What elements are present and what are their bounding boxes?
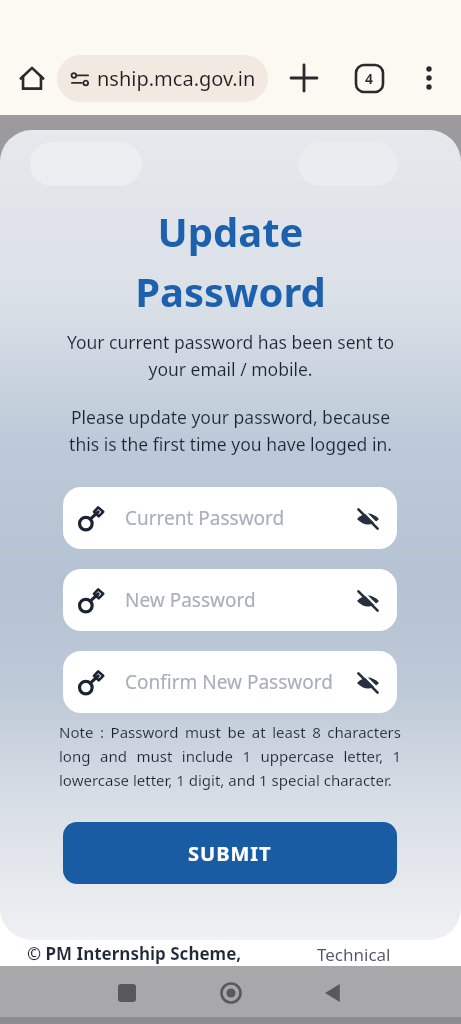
staticText: Confirm New Password	[125, 669, 333, 695]
staticText: 4	[365, 69, 374, 88]
button[interactable]	[285, 59, 323, 97]
button[interactable]	[108, 974, 146, 1012]
button[interactable]: New Password	[63, 569, 397, 631]
button[interactable]	[212, 974, 250, 1012]
button[interactable]: 4	[350, 59, 388, 97]
button[interactable]	[13, 59, 51, 97]
staticText: Note : Password must be at least 8 chara…	[59, 722, 401, 790]
staticText: Update Password	[0, 204, 461, 319]
button[interactable]: SUBMIT	[63, 822, 397, 884]
staticText: Your current password has been sent to y…	[0, 330, 461, 381]
staticText: Current Password	[125, 505, 285, 531]
button[interactable]: nship.mca.gov.in	[57, 55, 268, 102]
staticText: New Password	[125, 587, 256, 613]
staticText: SUBMIT	[188, 840, 272, 867]
button[interactable]	[314, 974, 352, 1012]
button[interactable]: Confirm New Password	[63, 651, 397, 713]
staticText: Technical	[317, 943, 391, 966]
staticText: © PM Internship Scheme,	[27, 942, 242, 965]
staticText: nship.mca.gov.in	[97, 65, 256, 92]
button[interactable]	[410, 59, 448, 97]
staticText: Please update your password, because thi…	[0, 405, 461, 456]
button[interactable]: Current Password	[63, 487, 397, 549]
